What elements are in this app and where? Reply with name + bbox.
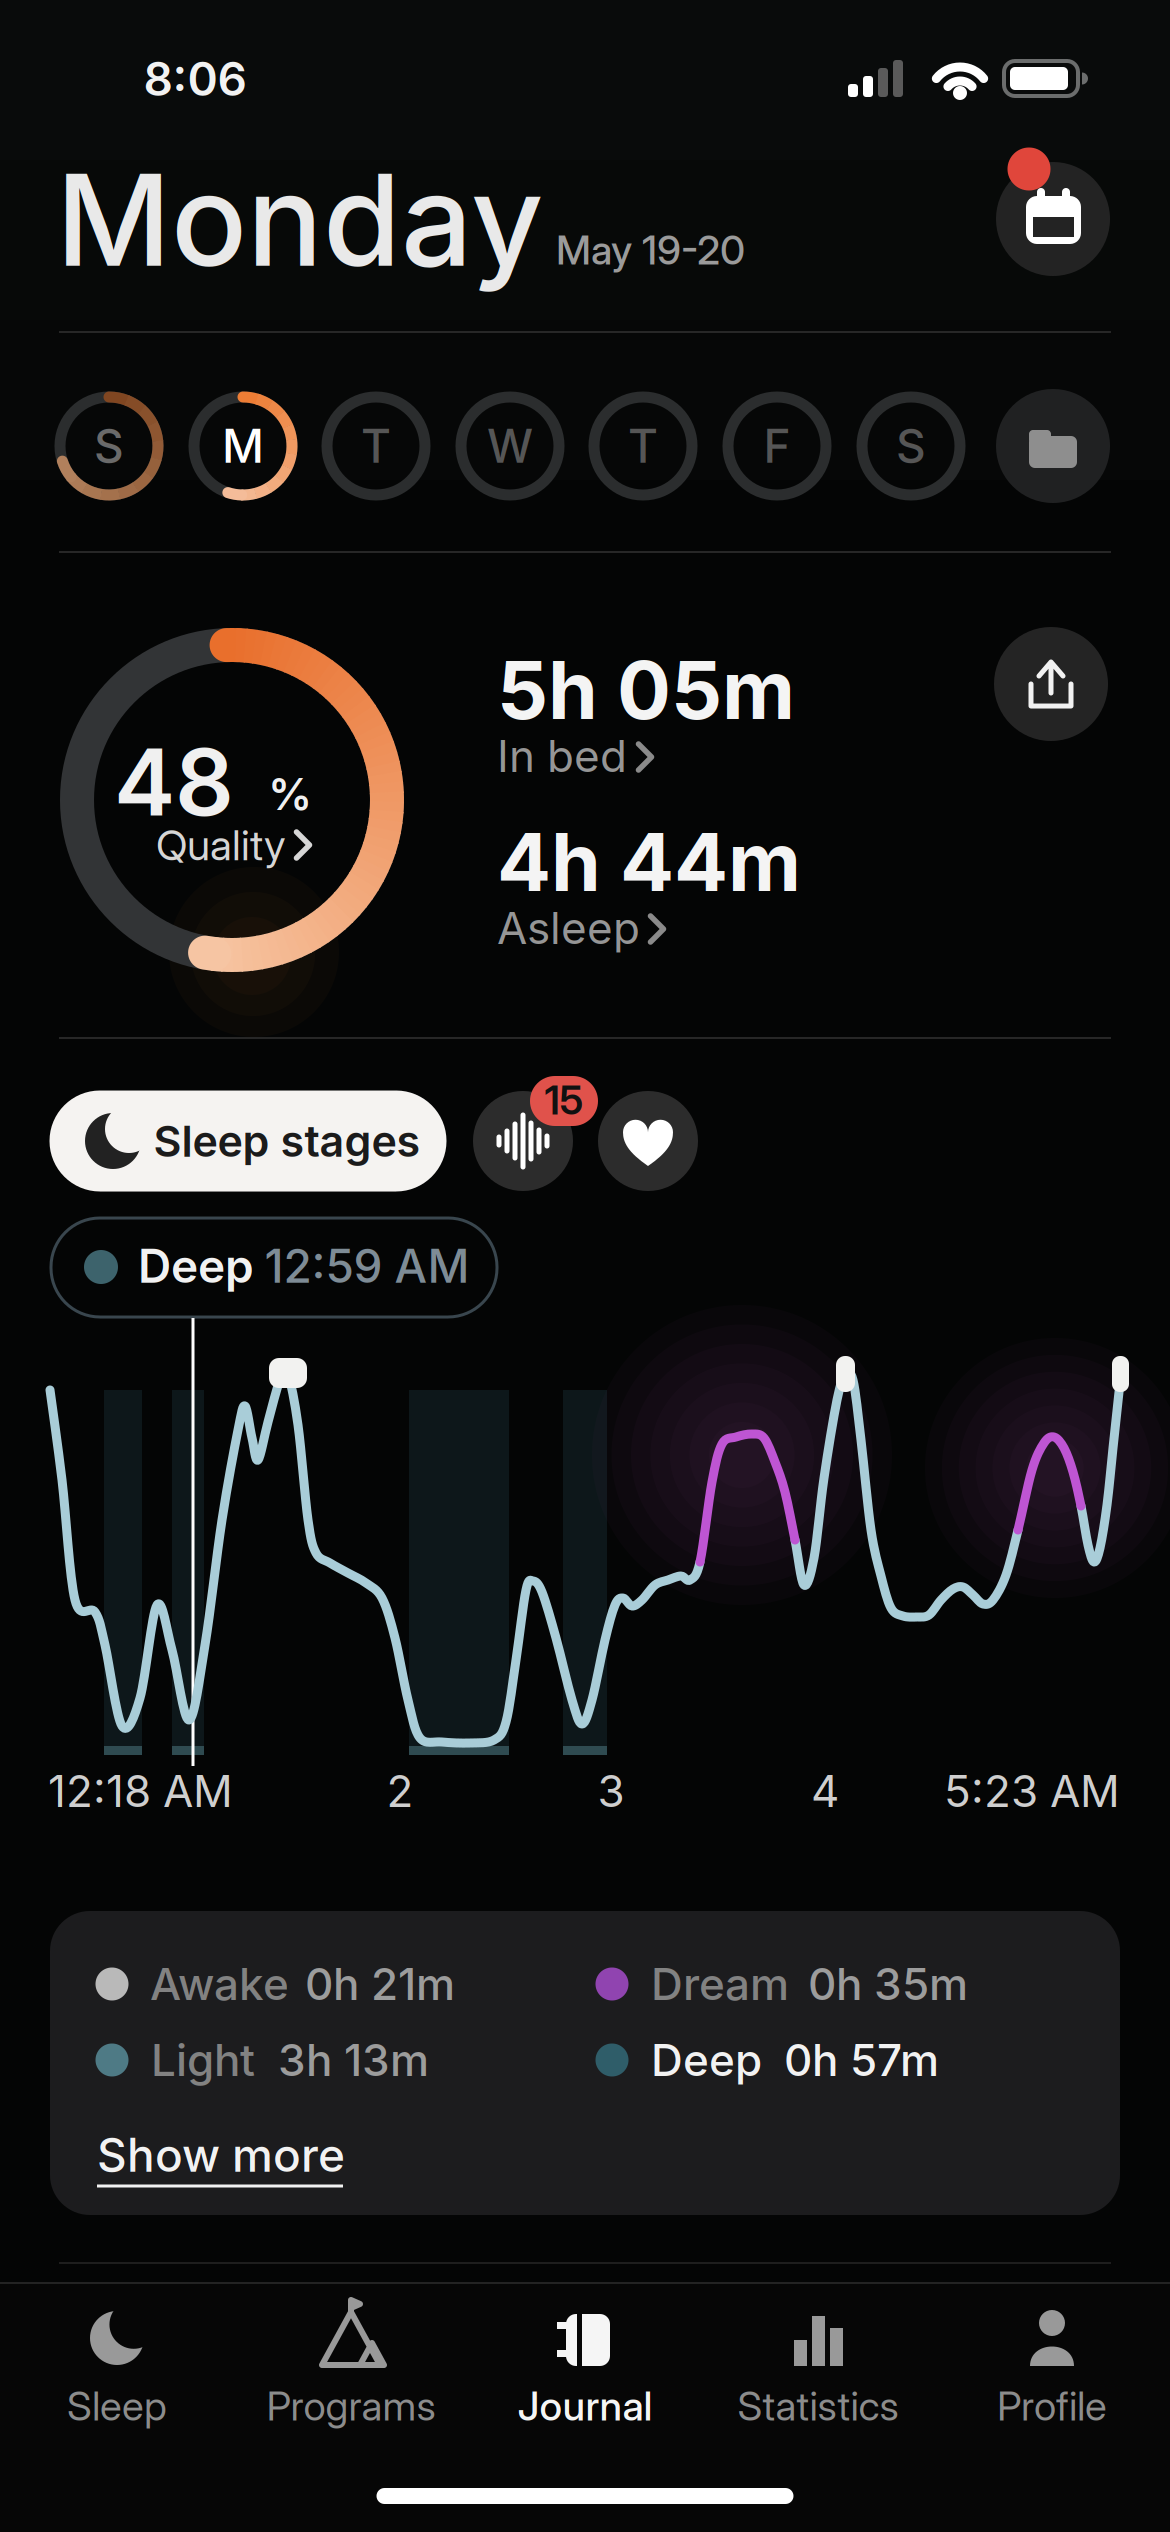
staticText: S [896, 418, 926, 474]
button[interactable]: Sleep stages [0, 0, 1170, 2532]
button[interactable]: 4h 44m [0, 0, 1170, 2532]
staticText: 0h 21m [305, 1957, 455, 2011]
button[interactable]: S [0, 0, 1170, 2532]
staticText: 48 [114, 726, 234, 838]
button[interactable]: 48 [0, 0, 1170, 2532]
staticText: 2 [386, 1764, 413, 1818]
staticText: Profile [997, 2382, 1107, 2430]
staticText: 0h 35m [808, 1957, 968, 2011]
staticText: 5h 05m [497, 642, 795, 738]
button[interactable]: Profile [0, 0, 1170, 2532]
button[interactable]: Statistics [0, 0, 1170, 2532]
button[interactable]: Sleep [0, 0, 1170, 2532]
button[interactable]: T [0, 0, 1170, 2532]
staticText: 3 [597, 1764, 624, 1818]
staticText: T [361, 418, 391, 474]
staticText: Deep [138, 1238, 254, 1294]
button[interactable]: 5h 05m [0, 0, 1170, 2532]
staticText: Awake [150, 1957, 289, 2011]
button[interactable]: W [0, 0, 1170, 2532]
staticText: In bed [497, 729, 627, 783]
staticText: Dream [651, 1957, 789, 2011]
button[interactable]: 15 [0, 0, 1170, 2532]
staticText: % [268, 767, 312, 821]
button[interactable] [0, 0, 1170, 2532]
staticText: 3h 13m [278, 2033, 429, 2087]
button[interactable]: Show more [0, 0, 1170, 2532]
button[interactable]: Journal [0, 0, 1170, 2532]
staticText: Show more [97, 2127, 345, 2183]
staticText: M [222, 418, 264, 474]
staticText: T [628, 418, 658, 474]
staticText: Quality [156, 820, 286, 870]
staticText: F [763, 418, 790, 474]
button[interactable]: F [0, 0, 1170, 2532]
staticText: 8:06 [143, 51, 246, 107]
button[interactable] [0, 0, 1170, 2532]
staticText: 4 [811, 1764, 839, 1818]
button[interactable]: M [0, 0, 1170, 2532]
button[interactable]: Deep [0, 0, 1170, 2532]
staticText: Light [151, 2033, 255, 2087]
staticText: May 19-20 [556, 226, 745, 274]
staticText: Journal [517, 2382, 652, 2430]
staticText: 12:18 AM [48, 1764, 233, 1818]
staticText: Sleep [67, 2382, 167, 2430]
button[interactable] [0, 0, 1170, 2532]
staticText: Statistics [737, 2382, 898, 2430]
staticText: 5:23 AM [944, 1764, 1120, 1818]
button[interactable]: S [0, 0, 1170, 2532]
staticText: Deep [651, 2033, 762, 2087]
staticText: Programs [266, 2382, 435, 2430]
staticText: S [94, 418, 124, 474]
staticText: 0h 57m [784, 2033, 939, 2087]
button[interactable]: Programs [0, 0, 1170, 2532]
staticText: 15 [544, 1076, 583, 1124]
staticText: W [487, 418, 533, 474]
staticText: 4h 44m [497, 814, 801, 910]
staticText: 12:59 AM [264, 1238, 469, 1294]
button[interactable] [0, 0, 1170, 2532]
staticText: Asleep [497, 901, 640, 955]
button[interactable]: T [0, 0, 1170, 2532]
staticText: Sleep stages [153, 1115, 420, 1167]
staticText: Monday [56, 144, 543, 296]
